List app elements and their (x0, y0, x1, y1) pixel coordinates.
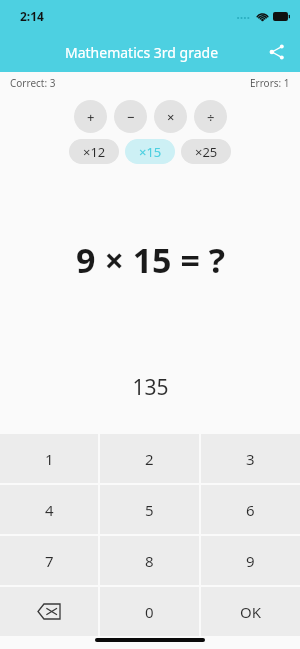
button[interactable]: 0 (100, 587, 199, 636)
button[interactable]: 3 (201, 434, 300, 483)
staticText: 0 (145, 602, 154, 622)
staticText: 2 (145, 449, 154, 469)
button[interactable]: − (114, 100, 147, 133)
button[interactable]: 9 (201, 536, 300, 585)
staticText: 9 × 15 = ? (76, 237, 225, 283)
staticText: ×15 (139, 143, 162, 161)
staticText: 3 (246, 449, 255, 469)
button[interactable]: ÷ (194, 100, 227, 133)
button[interactable]: Share (260, 35, 294, 69)
staticText: 8 (145, 551, 154, 571)
button[interactable]: 2 (100, 434, 199, 483)
staticText: 2:14 (20, 8, 44, 24)
button[interactable]: 4 (0, 485, 98, 534)
staticText: + (87, 108, 95, 126)
button[interactable]: Backspace (0, 587, 98, 636)
button[interactable]: 7 (0, 536, 98, 585)
button[interactable]: + (74, 100, 107, 133)
staticText: ×25 (195, 143, 218, 161)
button[interactable]: 5 (100, 485, 199, 534)
staticText: Correct: 3 (10, 76, 56, 90)
staticText: 135 (132, 373, 169, 402)
button[interactable]: ×15 (125, 139, 175, 164)
button[interactable]: 6 (201, 485, 300, 534)
staticText: 7 (45, 551, 54, 571)
staticText: Errors: 1 (250, 76, 290, 90)
button[interactable]: ×12 (69, 139, 119, 164)
button[interactable]: OK (201, 587, 300, 636)
staticText: 9 (246, 551, 255, 571)
button[interactable]: 1 (0, 434, 98, 483)
staticText: 1 (45, 449, 54, 469)
button[interactable]: 8 (100, 536, 199, 585)
staticText: ×12 (83, 143, 106, 161)
staticText: ÷ (207, 108, 215, 126)
staticText: − (127, 108, 135, 126)
staticText: Mathematics 3rd grade (65, 43, 219, 62)
button[interactable]: × (154, 100, 187, 133)
staticText: 5 (145, 500, 154, 520)
staticText: 4 (45, 500, 54, 520)
staticText: × (167, 108, 175, 126)
staticText: OK (240, 602, 262, 622)
staticText: 6 (246, 500, 255, 520)
button[interactable]: ×25 (181, 139, 231, 164)
